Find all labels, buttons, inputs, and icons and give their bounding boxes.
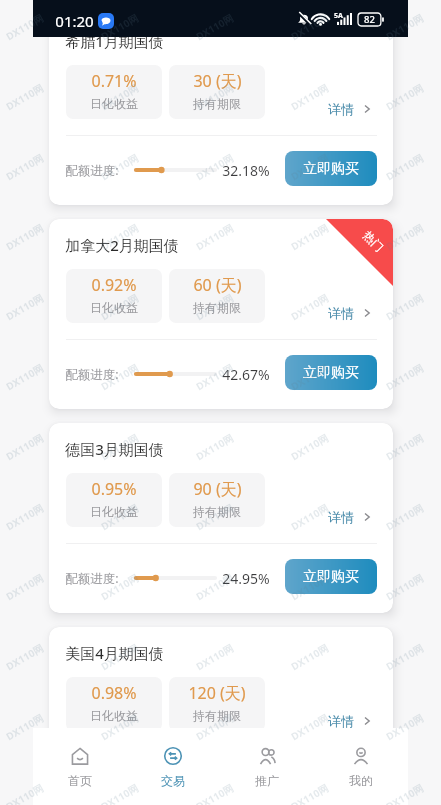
staticText: DX110网	[3, 291, 46, 323]
staticText: DX110网	[3, 11, 46, 43]
staticText: DX110网	[98, 501, 141, 533]
staticText: 0.71%	[91, 70, 137, 90]
staticText: 立即购买	[303, 568, 359, 586]
staticText: DX110网	[383, 221, 426, 253]
staticText: 持有期限	[193, 708, 241, 723]
staticText: 首页	[68, 773, 92, 788]
staticText: DX110网	[98, 151, 141, 183]
staticText: DX110网	[383, 81, 426, 113]
staticText: DX110网	[98, 641, 141, 673]
staticText: DX110网	[193, 711, 236, 743]
staticText: DX110网	[383, 501, 426, 533]
staticText: 30 (天)	[193, 70, 242, 90]
button[interactable]: 详情	[328, 713, 372, 729]
staticText: DX110网	[193, 81, 236, 113]
staticText: 0.92%	[91, 274, 137, 294]
staticText: 0.98%	[91, 682, 137, 702]
staticText: 24.95%	[222, 569, 270, 588]
button[interactable]: 详情	[328, 101, 372, 117]
staticText: 01:20	[55, 11, 94, 27]
staticText: 希腊1月期国债	[65, 31, 164, 51]
button[interactable]: 我的	[314, 728, 408, 788]
staticText: DX110网	[98, 11, 141, 43]
staticText: DX110网	[288, 571, 331, 603]
other: Wi-Fi	[313, 12, 328, 27]
staticText: DX110网	[193, 641, 236, 673]
staticText: DX110网	[193, 11, 236, 43]
staticText: 详情	[328, 305, 354, 321]
staticText: 120 (天)	[188, 682, 246, 702]
staticText: 0.95%	[91, 478, 137, 498]
staticText: DX110网	[383, 571, 426, 603]
button[interactable]: 美国4月期国债	[49, 627, 393, 805]
button[interactable]: 详情	[328, 509, 372, 525]
staticText: DX110网	[3, 151, 46, 183]
staticText: DX110网	[3, 81, 46, 113]
staticText: 立即购买	[303, 772, 359, 790]
button[interactable]: 交易	[126, 728, 220, 788]
staticText: DX110网	[98, 291, 141, 323]
staticText: DX110网	[193, 221, 236, 253]
staticText: DX110网	[193, 291, 236, 323]
staticText: 5A	[334, 11, 343, 21]
staticText: DX110网	[98, 711, 141, 743]
staticText: 详情	[328, 101, 354, 117]
staticText: 82	[364, 13, 375, 26]
staticText: DX110网	[193, 361, 236, 393]
staticText: 详情	[328, 713, 354, 729]
staticText: DX110网	[98, 571, 141, 603]
staticText: DX110网	[3, 361, 46, 393]
button[interactable]: 德国3月期国债	[49, 423, 393, 613]
staticText: DX110网	[288, 81, 331, 113]
staticText: DX110网	[193, 151, 236, 183]
staticText: DX110网	[383, 291, 426, 323]
staticText: 90 (天)	[193, 478, 242, 498]
staticText: DX110网	[98, 361, 141, 393]
staticText: DX110网	[288, 501, 331, 533]
button[interactable]: 立即购买	[285, 559, 377, 594]
button[interactable]: 立即购买	[285, 763, 377, 798]
staticText: DX110网	[3, 641, 46, 673]
staticText: DX110网	[3, 571, 46, 603]
staticText: 立即购买	[303, 364, 359, 382]
staticText: DX110网	[383, 711, 426, 743]
staticText: DX110网	[383, 431, 426, 463]
staticText: 配额进度:	[65, 366, 119, 383]
staticText: 55.00%	[222, 773, 270, 792]
staticText: 德国3月期国债	[65, 439, 164, 459]
staticText: DX110网	[193, 501, 236, 533]
staticText: DX110网	[288, 781, 331, 805]
button[interactable]: 希腊1月期国债	[49, 15, 393, 205]
staticText: DX110网	[383, 151, 426, 183]
button[interactable]: 立即购买	[285, 151, 377, 186]
button[interactable]: 加拿大2月期国债	[49, 219, 393, 409]
button[interactable]: 推广	[220, 728, 314, 788]
staticText: DX110网	[288, 361, 331, 393]
staticText: 日化收益	[90, 300, 138, 315]
staticText: 我的	[349, 773, 373, 788]
staticText: 日化收益	[90, 504, 138, 519]
staticText: 42.67%	[222, 365, 270, 384]
button[interactable]: 详情	[328, 305, 372, 321]
staticText: 交易	[161, 773, 185, 788]
staticText: DX110网	[3, 221, 46, 253]
button[interactable]: 首页	[33, 728, 126, 788]
staticText: 推广	[255, 773, 279, 788]
staticText: 热门	[360, 228, 386, 254]
staticText: DX110网	[193, 431, 236, 463]
staticText: DX110网	[288, 221, 331, 253]
staticText: 美国4月期国债	[65, 643, 164, 663]
staticText: 配额进度:	[65, 570, 119, 587]
button[interactable]: 立即购买	[285, 355, 377, 390]
staticText: 持有期限	[193, 300, 241, 315]
staticText: DX110网	[98, 431, 141, 463]
staticText: 立即购买	[303, 160, 359, 178]
staticText: DX110网	[288, 291, 331, 323]
staticText: 加拿大2月期国债	[65, 235, 179, 255]
staticText: 持有期限	[193, 96, 241, 111]
staticText: DX110网	[383, 361, 426, 393]
staticText: DX110网	[288, 11, 331, 43]
staticText: 32.18%	[222, 161, 270, 180]
staticText: DX110网	[288, 151, 331, 183]
staticText: 配额进度:	[65, 774, 119, 791]
